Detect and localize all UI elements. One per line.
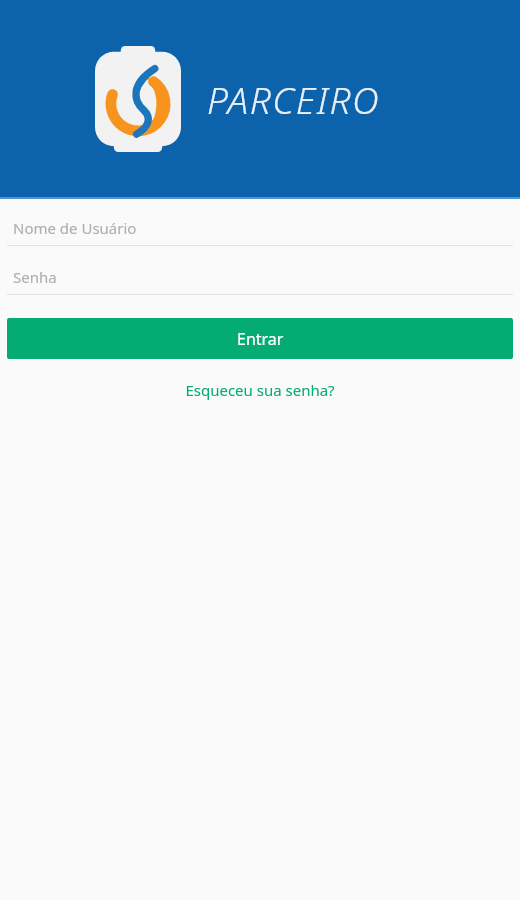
- staticText: Esqueceu sua senha?: [185, 380, 335, 400]
- button[interactable]: Nome de Usuário: [0, 199, 520, 246]
- staticText: Senha: [13, 267, 57, 287]
- button[interactable]: Entrar: [7, 318, 513, 359]
- staticText: Entrar: [237, 328, 284, 350]
- button[interactable]: Senha: [0, 246, 520, 295]
- other: Logotipo Parceiro: [95, 46, 181, 152]
- staticText: Nome de Usuário: [13, 218, 137, 238]
- button[interactable]: Esqueceu sua senha?: [0, 375, 520, 405]
- staticText: PARCEIRO: [207, 74, 381, 124]
